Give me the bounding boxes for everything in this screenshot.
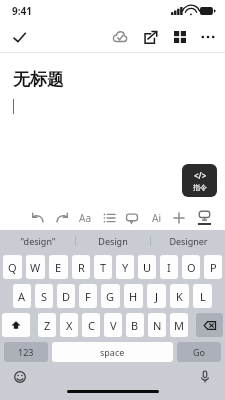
staticText: 123	[18, 346, 34, 358]
button[interactable]: O	[182, 255, 200, 279]
button[interactable]: S	[35, 284, 53, 308]
button[interactable]: Done	[0, 22, 38, 52]
staticText: 9:41	[12, 4, 32, 18]
button[interactable]: X	[60, 313, 78, 337]
button[interactable]: U	[138, 255, 156, 279]
staticText: "design"	[20, 235, 56, 247]
button[interactable]: V	[104, 313, 122, 337]
staticText: C	[88, 318, 95, 333]
staticText: B	[131, 318, 139, 333]
staticText: E	[55, 260, 62, 275]
staticText: D	[62, 289, 71, 304]
button[interactable]: K	[170, 284, 189, 308]
staticText: G	[106, 289, 115, 304]
staticText: Go	[193, 346, 205, 358]
staticText: N	[153, 318, 162, 333]
button[interactable]: Q	[3, 255, 22, 279]
button[interactable]: Share	[135, 22, 165, 52]
button[interactable]: Z	[38, 313, 56, 337]
button[interactable]: I	[160, 255, 178, 279]
staticText: </>	[194, 170, 207, 181]
staticText: O	[187, 260, 196, 275]
staticText: R	[78, 260, 85, 275]
button[interactable]: F	[79, 284, 97, 308]
button[interactable]: Ai	[146, 208, 166, 228]
staticText: Z	[44, 318, 51, 333]
staticText: K	[176, 289, 183, 304]
staticText: Design	[98, 235, 128, 247]
button[interactable]: 123	[4, 342, 48, 362]
button[interactable]: L	[193, 284, 212, 308]
button[interactable]: Add	[169, 208, 189, 228]
staticText: W	[30, 260, 41, 275]
button[interactable]: N	[148, 313, 166, 337]
button[interactable]: Cloud sync	[105, 22, 135, 52]
staticText: S	[41, 289, 48, 304]
button[interactable]: Design	[76, 230, 150, 252]
button[interactable]: More options	[195, 22, 221, 52]
button[interactable]: B	[126, 313, 144, 337]
button[interactable]: Undo	[28, 208, 48, 228]
button[interactable]: Y	[116, 255, 134, 279]
button[interactable]: H	[124, 284, 143, 308]
button[interactable]: Voice input	[195, 367, 215, 387]
button[interactable]: List	[99, 208, 119, 228]
staticText: Designer	[169, 235, 208, 247]
staticText: Q	[8, 260, 17, 275]
button[interactable]: Grid view	[165, 22, 195, 52]
button[interactable]: M	[170, 313, 188, 337]
staticText: J	[155, 289, 159, 304]
button[interactable]: G	[101, 284, 120, 308]
staticText: M	[174, 318, 184, 333]
button[interactable]: Aa	[75, 208, 95, 228]
staticText: Y	[122, 260, 129, 275]
button[interactable]: D	[57, 284, 75, 308]
button[interactable]: Backspace	[196, 313, 223, 337]
staticText: 指令	[193, 183, 207, 192]
staticText: L	[200, 289, 206, 304]
button[interactable]: </>	[182, 164, 217, 197]
staticText: H	[129, 289, 138, 304]
staticText: I	[167, 260, 171, 275]
button[interactable]: Designer	[151, 230, 225, 252]
staticText: 无标题	[13, 69, 64, 90]
button[interactable]: Keyboard	[193, 205, 215, 230]
staticText: T	[100, 260, 107, 275]
button[interactable]: P	[204, 255, 222, 279]
button[interactable]: space	[52, 342, 173, 362]
button[interactable]: J	[147, 284, 166, 308]
staticText: space	[100, 346, 125, 358]
button[interactable]: "design"	[0, 230, 75, 252]
staticText: A	[18, 289, 26, 304]
staticText: F	[85, 289, 91, 304]
staticText: P	[210, 260, 217, 275]
button[interactable]: R	[72, 255, 90, 279]
button[interactable]: A	[13, 284, 31, 308]
button[interactable]: Redo	[52, 208, 72, 228]
staticText: Aa	[79, 211, 91, 225]
button[interactable]: T	[94, 255, 112, 279]
button[interactable]: Emoji	[10, 367, 30, 387]
staticText: Ai	[152, 211, 161, 225]
staticText: U	[143, 260, 152, 275]
button[interactable]: Shift	[2, 313, 30, 337]
button[interactable]: Go	[177, 342, 221, 362]
button[interactable]: W	[26, 255, 45, 279]
button[interactable]: E	[49, 255, 68, 279]
button[interactable]: Comment	[122, 208, 142, 228]
staticText: X	[66, 318, 73, 333]
button[interactable]: C	[82, 313, 100, 337]
staticText: V	[110, 318, 117, 333]
